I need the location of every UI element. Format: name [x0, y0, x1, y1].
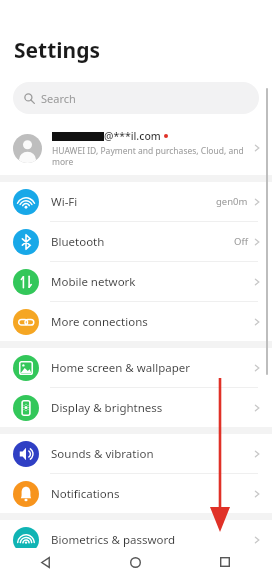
staticText: More connections	[51, 314, 252, 330]
staticText: Settings	[14, 36, 101, 65]
staticText: gen0m	[216, 195, 248, 208]
staticText: Notifications	[51, 486, 252, 502]
button[interactable]: Bluetooth	[0, 222, 272, 261]
button[interactable]: @***il.com	[0, 121, 272, 175]
staticText: Home screen & wallpaper	[51, 360, 252, 376]
button[interactable]: Mobile network	[0, 262, 272, 301]
button[interactable]: Sounds & vibration	[0, 434, 272, 473]
button[interactable]: Home screen & wallpaper	[0, 348, 272, 387]
staticText: Off	[234, 235, 248, 248]
button[interactable]: Wi-Fi	[0, 182, 272, 221]
button[interactable]: Home	[90, 548, 180, 576]
staticText: Search	[41, 91, 76, 106]
button[interactable]: Display & brightness	[0, 388, 272, 427]
button[interactable]: Recents	[180, 548, 270, 576]
button[interactable]: Back	[0, 548, 90, 576]
button[interactable]: Search	[13, 82, 259, 114]
staticText: @***il.com	[104, 129, 161, 143]
staticText: Display & brightness	[51, 400, 252, 416]
staticText: Sounds & vibration	[51, 446, 252, 462]
staticText: HUAWEI ID, Payment and purchases, Cloud,…	[52, 145, 249, 167]
button[interactable]: Biometrics & password	[0, 520, 272, 559]
staticText: Mobile network	[51, 274, 252, 290]
staticText: Bluetooth	[51, 234, 234, 250]
button[interactable]: More connections	[0, 302, 272, 341]
staticText: Wi-Fi	[51, 194, 216, 210]
staticText: Biometrics & password	[51, 532, 252, 548]
button[interactable]: Notifications	[0, 474, 272, 513]
